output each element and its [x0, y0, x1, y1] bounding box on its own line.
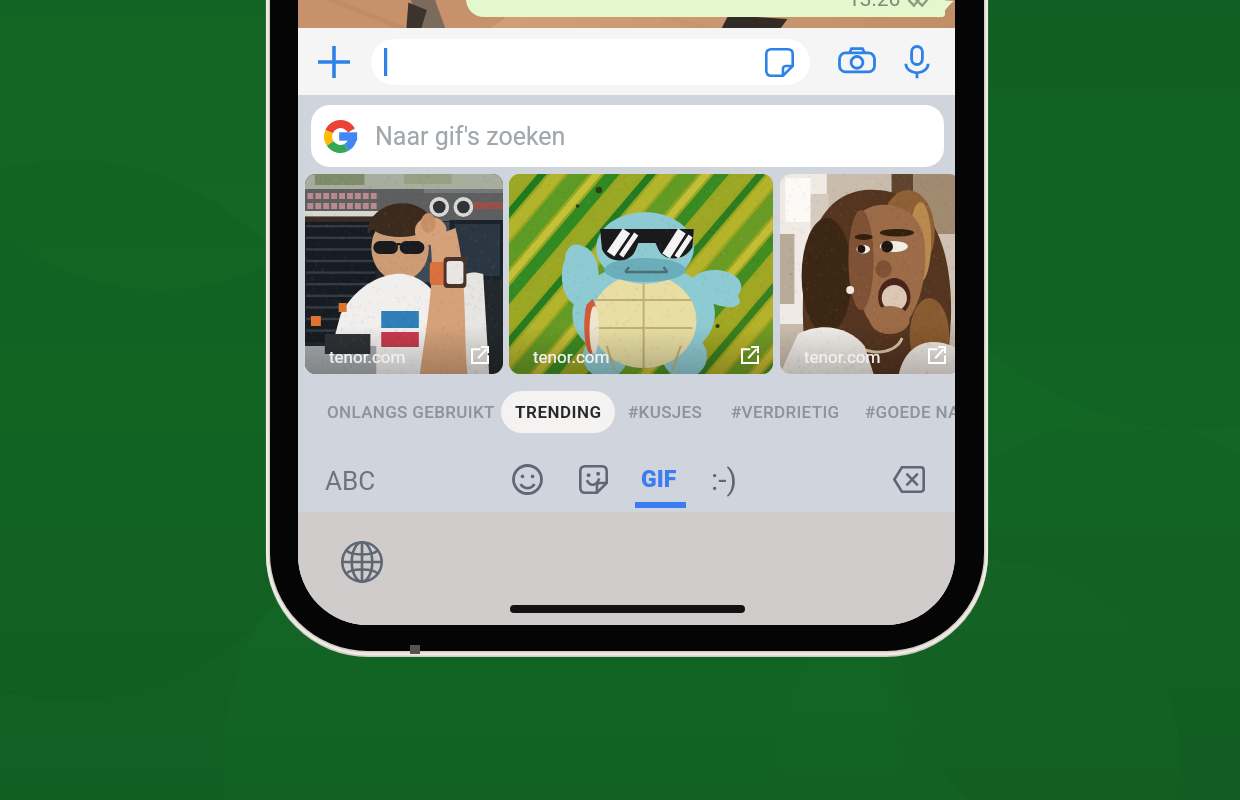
button[interactable]: Message input field [371, 39, 810, 85]
button[interactable]: Add attachment [303, 28, 365, 95]
staticText: #KUSJES [628, 402, 703, 422]
button[interactable]: Voice message [889, 28, 945, 95]
staticText: ABC [325, 466, 376, 496]
button[interactable]: #GOEDE NACHT [865, 391, 955, 433]
button[interactable]: ONLANGS GEBRUIKT [327, 391, 495, 433]
button[interactable]: Emoticons [694, 446, 754, 512]
button[interactable]: ABC [302, 448, 398, 514]
staticText: :-) [711, 462, 738, 497]
button[interactable]: Camera [827, 28, 887, 95]
staticText: Naar gif's zoeken [375, 122, 566, 151]
button[interactable]: Emoji [497, 446, 557, 512]
button[interactable]: GIF [629, 446, 689, 512]
staticText: 13:26 [848, 0, 901, 12]
staticText: tenor.com [804, 347, 881, 367]
button[interactable]: GIF from tenor.com [305, 174, 503, 374]
staticText: ONLANGS GEBRUIKT [327, 402, 495, 422]
button[interactable]: GIF from tenor.com [780, 174, 955, 374]
staticText: GIF [641, 466, 677, 493]
staticText: TRENDING [515, 402, 602, 422]
button[interactable]: TRENDING [501, 391, 615, 433]
button[interactable]: #VERDRIETIG [731, 391, 840, 433]
staticText: #VERDRIETIG [731, 402, 840, 422]
staticText: #GOEDE NACHT [865, 402, 955, 422]
button[interactable]: Backspace [878, 446, 938, 512]
button[interactable]: #KUSJES [628, 391, 703, 433]
button[interactable]: Stickers [762, 45, 796, 79]
staticText: tenor.com [533, 347, 610, 367]
staticText: tenor.com [329, 347, 406, 367]
button[interactable]: GIF from tenor.com [509, 174, 773, 374]
button[interactable]: Stickers [563, 446, 623, 512]
button[interactable]: Naar gif's zoeken [311, 105, 944, 167]
button[interactable]: Change keyboard [334, 534, 390, 590]
